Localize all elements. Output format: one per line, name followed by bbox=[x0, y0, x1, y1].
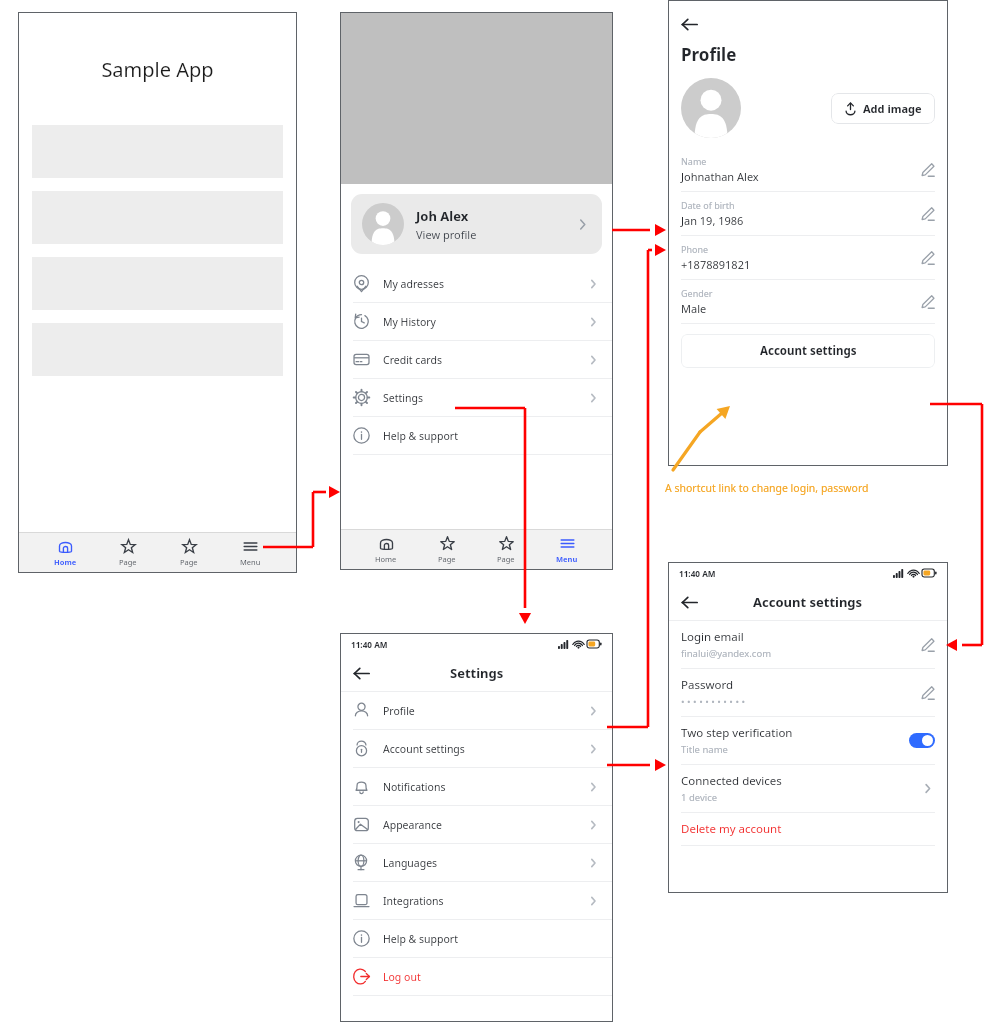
other: Edit password bbox=[920, 685, 935, 700]
button[interactable]: Page bbox=[174, 537, 204, 569]
button[interactable]: Page bbox=[113, 537, 143, 569]
button[interactable]: Back bbox=[353, 665, 370, 682]
staticText: Account settings bbox=[753, 593, 863, 611]
button[interactable]: Appearance bbox=[340, 806, 613, 843]
staticText: 11:40 AM bbox=[351, 639, 388, 650]
staticText: • • • • • • • • • • • bbox=[681, 695, 745, 708]
staticText: Title name bbox=[681, 743, 728, 756]
staticText: Notifications bbox=[383, 780, 446, 794]
button[interactable]: Home bbox=[48, 537, 83, 569]
button[interactable]: Help & support bbox=[340, 417, 613, 454]
staticText: Phone bbox=[681, 243, 709, 255]
button[interactable]: Add image bbox=[831, 93, 935, 124]
staticText: My adresses bbox=[383, 277, 445, 291]
staticText: Menu bbox=[240, 557, 261, 567]
staticText: Page bbox=[180, 557, 198, 567]
staticText: Delete my account bbox=[681, 821, 782, 837]
staticText: Account settings bbox=[383, 742, 465, 756]
staticText: 1 device bbox=[681, 791, 718, 804]
staticText: Help & support bbox=[383, 429, 458, 443]
button[interactable]: Page bbox=[432, 534, 462, 566]
button[interactable]: Home bbox=[369, 534, 403, 566]
staticText: Integrations bbox=[383, 894, 444, 908]
button[interactable]: My History bbox=[340, 303, 613, 340]
button[interactable]: Login email bbox=[668, 621, 948, 668]
staticText: Johnathan Alex bbox=[681, 169, 759, 184]
button[interactable]: Two step verification bbox=[668, 717, 948, 764]
other: Edit Gender bbox=[920, 294, 935, 309]
button[interactable]: Credit cards bbox=[340, 341, 613, 378]
button[interactable]: Account settings bbox=[681, 334, 935, 368]
staticText: Jan 19, 1986 bbox=[681, 213, 744, 228]
button[interactable]: Languages bbox=[340, 844, 613, 881]
other: Edit Phone bbox=[920, 250, 935, 265]
other: Edit Date of birth bbox=[920, 206, 935, 221]
button[interactable]: Delete my account bbox=[668, 813, 948, 845]
staticText: Languages bbox=[383, 856, 438, 870]
staticText: Credit cards bbox=[383, 353, 442, 367]
staticText: View profile bbox=[416, 227, 477, 242]
staticText: A shortcut link to change login, passwor… bbox=[665, 481, 869, 495]
staticText: Account settings bbox=[760, 343, 857, 359]
staticText: My History bbox=[383, 315, 436, 329]
staticText: Page bbox=[438, 554, 456, 564]
staticText: Profile bbox=[383, 704, 415, 718]
button[interactable]: Password bbox=[668, 669, 948, 716]
button[interactable]: Date of birth bbox=[668, 192, 948, 235]
button[interactable]: Account settings bbox=[340, 730, 613, 767]
staticText: Name bbox=[681, 155, 707, 167]
staticText: Male bbox=[681, 301, 707, 316]
button[interactable]: Back bbox=[681, 594, 698, 611]
button[interactable]: Profile bbox=[340, 692, 613, 729]
staticText: Joh Alex bbox=[416, 207, 469, 225]
staticText: Help & support bbox=[383, 932, 458, 946]
button[interactable]: Integrations bbox=[340, 882, 613, 919]
staticText: Page bbox=[497, 554, 515, 564]
staticText: Connected devices bbox=[681, 773, 782, 789]
staticText: Settings bbox=[450, 664, 504, 682]
staticText: Home bbox=[54, 557, 77, 567]
button[interactable]: My adresses bbox=[340, 265, 613, 302]
staticText: Settings bbox=[383, 391, 423, 405]
other: Edit login email bbox=[920, 637, 935, 652]
button[interactable]: Notifications bbox=[340, 768, 613, 805]
staticText: Page bbox=[119, 557, 137, 567]
button[interactable]: Menu bbox=[234, 537, 267, 569]
staticText: Log out bbox=[383, 970, 421, 984]
button[interactable]: Gender bbox=[668, 280, 948, 323]
button[interactable]: Menu bbox=[550, 534, 584, 566]
staticText: Gender bbox=[681, 287, 713, 299]
staticText: Two step verification bbox=[681, 725, 793, 741]
staticText: finalui@yandex.com bbox=[681, 647, 772, 660]
staticText: Sample App bbox=[18, 56, 297, 83]
button[interactable]: Settings bbox=[340, 379, 613, 416]
button[interactable]: Page bbox=[491, 534, 521, 566]
staticText: Home bbox=[375, 554, 397, 564]
staticText: +1878891821 bbox=[681, 257, 751, 272]
staticText: 11:40 AM bbox=[679, 568, 716, 579]
button[interactable]: Two step verification toggle bbox=[909, 733, 935, 748]
button[interactable]: Help & support bbox=[340, 920, 613, 957]
button[interactable]: Name bbox=[668, 148, 948, 191]
button[interactable]: Log out bbox=[340, 958, 613, 995]
button[interactable]: Phone bbox=[668, 236, 948, 279]
button[interactable]: Connected devices bbox=[668, 765, 948, 812]
button[interactable]: Joh Alex bbox=[351, 194, 602, 254]
staticText: Add image bbox=[863, 101, 922, 116]
staticText: Profile bbox=[681, 43, 737, 66]
staticText: Password bbox=[681, 677, 734, 693]
staticText: Login email bbox=[681, 629, 744, 645]
button[interactable]: Back bbox=[681, 16, 698, 33]
staticText: Date of birth bbox=[681, 199, 735, 211]
other: Edit Name bbox=[920, 162, 935, 177]
staticText: Menu bbox=[556, 554, 578, 564]
staticText: Appearance bbox=[383, 818, 442, 832]
